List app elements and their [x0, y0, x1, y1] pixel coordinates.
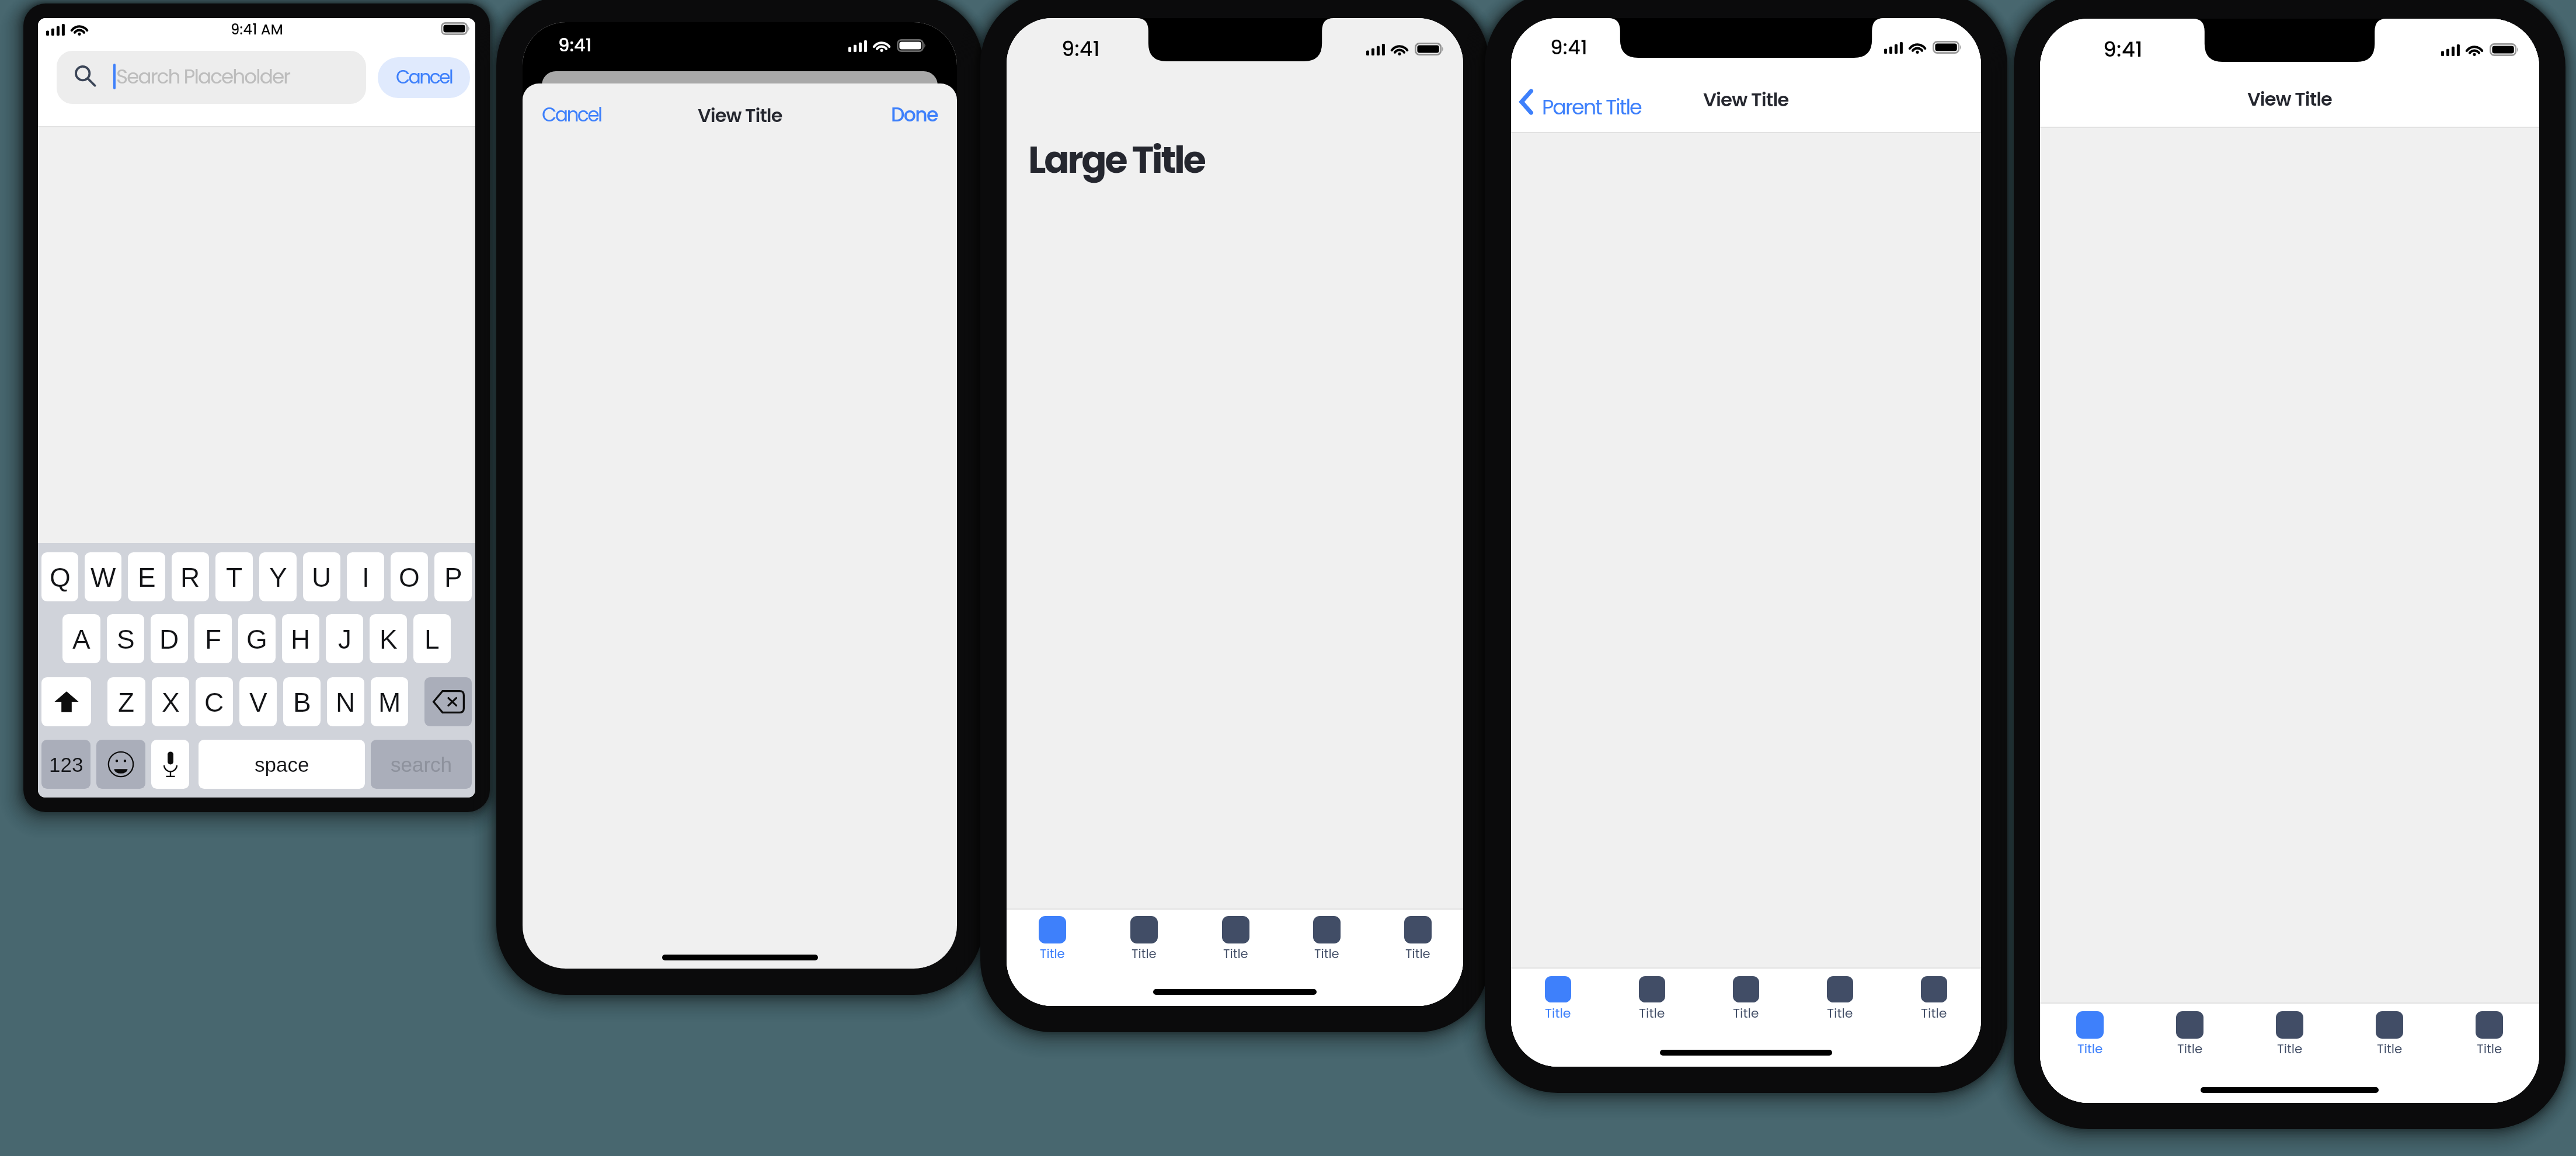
staticText: A: [72, 624, 90, 654]
button[interactable]: Title: [1007, 916, 1098, 963]
staticText: Z: [118, 687, 135, 717]
staticText: S: [117, 624, 135, 654]
button[interactable]: Q: [41, 552, 78, 601]
staticText: K: [380, 624, 398, 654]
staticText: H: [291, 624, 311, 654]
staticText: P: [444, 562, 462, 592]
button[interactable]: W: [85, 552, 121, 601]
button[interactable]: Title: [1605, 976, 1699, 1022]
button[interactable]: Title: [2140, 1011, 2240, 1057]
staticText: I: [362, 562, 370, 592]
button[interactable]: [57, 51, 366, 104]
button[interactable]: Emoji: [96, 740, 145, 789]
staticText: F: [205, 624, 222, 654]
button[interactable]: M: [371, 677, 408, 726]
staticText: Cancel: [396, 64, 452, 90]
staticText: Title: [1639, 1004, 1665, 1022]
button[interactable]: O: [391, 552, 428, 601]
button[interactable]: Shift: [41, 677, 91, 726]
staticText: Large Title: [1028, 134, 1205, 186]
staticText: View Title: [1703, 86, 1789, 113]
button[interactable]: Title: [1793, 976, 1887, 1022]
staticText: View Title: [698, 102, 782, 128]
button[interactable]: S: [107, 614, 144, 663]
other: Back: [1519, 89, 1533, 115]
button[interactable]: search: [371, 740, 472, 789]
button[interactable]: P: [434, 552, 472, 601]
button[interactable]: H: [282, 614, 319, 663]
button[interactable]: K: [370, 614, 407, 663]
button[interactable]: 123: [41, 740, 90, 789]
button[interactable]: Title: [2439, 1011, 2539, 1057]
button[interactable]: Title: [1511, 976, 1605, 1022]
button[interactable]: A: [62, 614, 100, 663]
staticText: Search Placeholder: [116, 62, 290, 90]
staticText: space: [255, 753, 309, 776]
button[interactable]: space: [199, 740, 365, 789]
staticText: Y: [269, 562, 287, 592]
staticText: R: [180, 562, 200, 592]
staticText: Title: [1827, 1004, 1853, 1022]
staticText: 123: [49, 753, 83, 776]
button[interactable]: Title: [1887, 976, 1981, 1022]
button[interactable]: Title: [2040, 1011, 2140, 1057]
staticText: M: [378, 687, 401, 717]
button[interactable]: Cancel: [378, 57, 470, 98]
staticText: B: [293, 687, 311, 717]
button[interactable]: Delete: [424, 677, 472, 726]
button[interactable]: Title: [1190, 916, 1281, 963]
button[interactable]: Z: [107, 677, 145, 726]
button[interactable]: Title: [2340, 1011, 2439, 1057]
button[interactable]: Dictate: [151, 740, 189, 789]
button[interactable]: D: [151, 614, 188, 663]
staticText: Title: [2377, 1040, 2403, 1057]
button[interactable]: Title: [1699, 976, 1793, 1022]
staticText: Title: [1314, 945, 1339, 963]
staticText: Parent Title: [1542, 93, 1641, 121]
staticText: View Title: [2247, 86, 2332, 112]
button[interactable]: Title: [1281, 916, 1372, 963]
button[interactable]: Title: [2240, 1011, 2340, 1057]
staticText: D: [159, 624, 179, 654]
button[interactable]: L: [413, 614, 451, 663]
staticText: U: [312, 562, 332, 592]
button[interactable]: U: [303, 552, 340, 601]
button[interactable]: B: [283, 677, 321, 726]
staticText: J: [338, 624, 351, 654]
staticText: Title: [2177, 1040, 2203, 1057]
button[interactable]: T: [215, 552, 253, 601]
button[interactable]: Back: [1515, 83, 1648, 120]
button[interactable]: G: [238, 614, 276, 663]
button[interactable]: V: [239, 677, 277, 726]
button[interactable]: X: [152, 677, 189, 726]
staticText: C: [204, 687, 224, 717]
button[interactable]: F: [194, 614, 232, 663]
button[interactable]: R: [172, 552, 209, 601]
staticText: L: [424, 624, 440, 654]
staticText: 9:41: [558, 33, 592, 58]
staticText: O: [399, 562, 420, 592]
staticText: 9:41: [2103, 34, 2143, 64]
staticText: Title: [1132, 945, 1157, 963]
staticText: Title: [2077, 1040, 2103, 1057]
button[interactable]: I: [347, 552, 384, 601]
button[interactable]: Done: [910, 83, 957, 110]
staticText: Title: [1040, 945, 1065, 963]
button[interactable]: E: [128, 552, 165, 601]
button[interactable]: N: [327, 677, 364, 726]
button[interactable]: C: [196, 677, 233, 726]
staticText: Title: [1921, 1004, 1947, 1022]
staticText: Title: [1223, 945, 1248, 963]
staticText: 9:41: [1061, 34, 1100, 63]
button[interactable]: Title: [1372, 916, 1463, 963]
button[interactable]: Title: [1098, 916, 1190, 963]
button[interactable]: J: [326, 614, 363, 663]
staticText: Title: [2277, 1040, 2303, 1057]
staticText: T: [226, 562, 243, 592]
staticText: Title: [2477, 1040, 2502, 1057]
staticText: E: [138, 562, 156, 592]
staticText: G: [246, 624, 267, 654]
button[interactable]: Cancel: [523, 83, 582, 110]
staticText: X: [162, 687, 180, 717]
button[interactable]: Y: [259, 552, 297, 601]
